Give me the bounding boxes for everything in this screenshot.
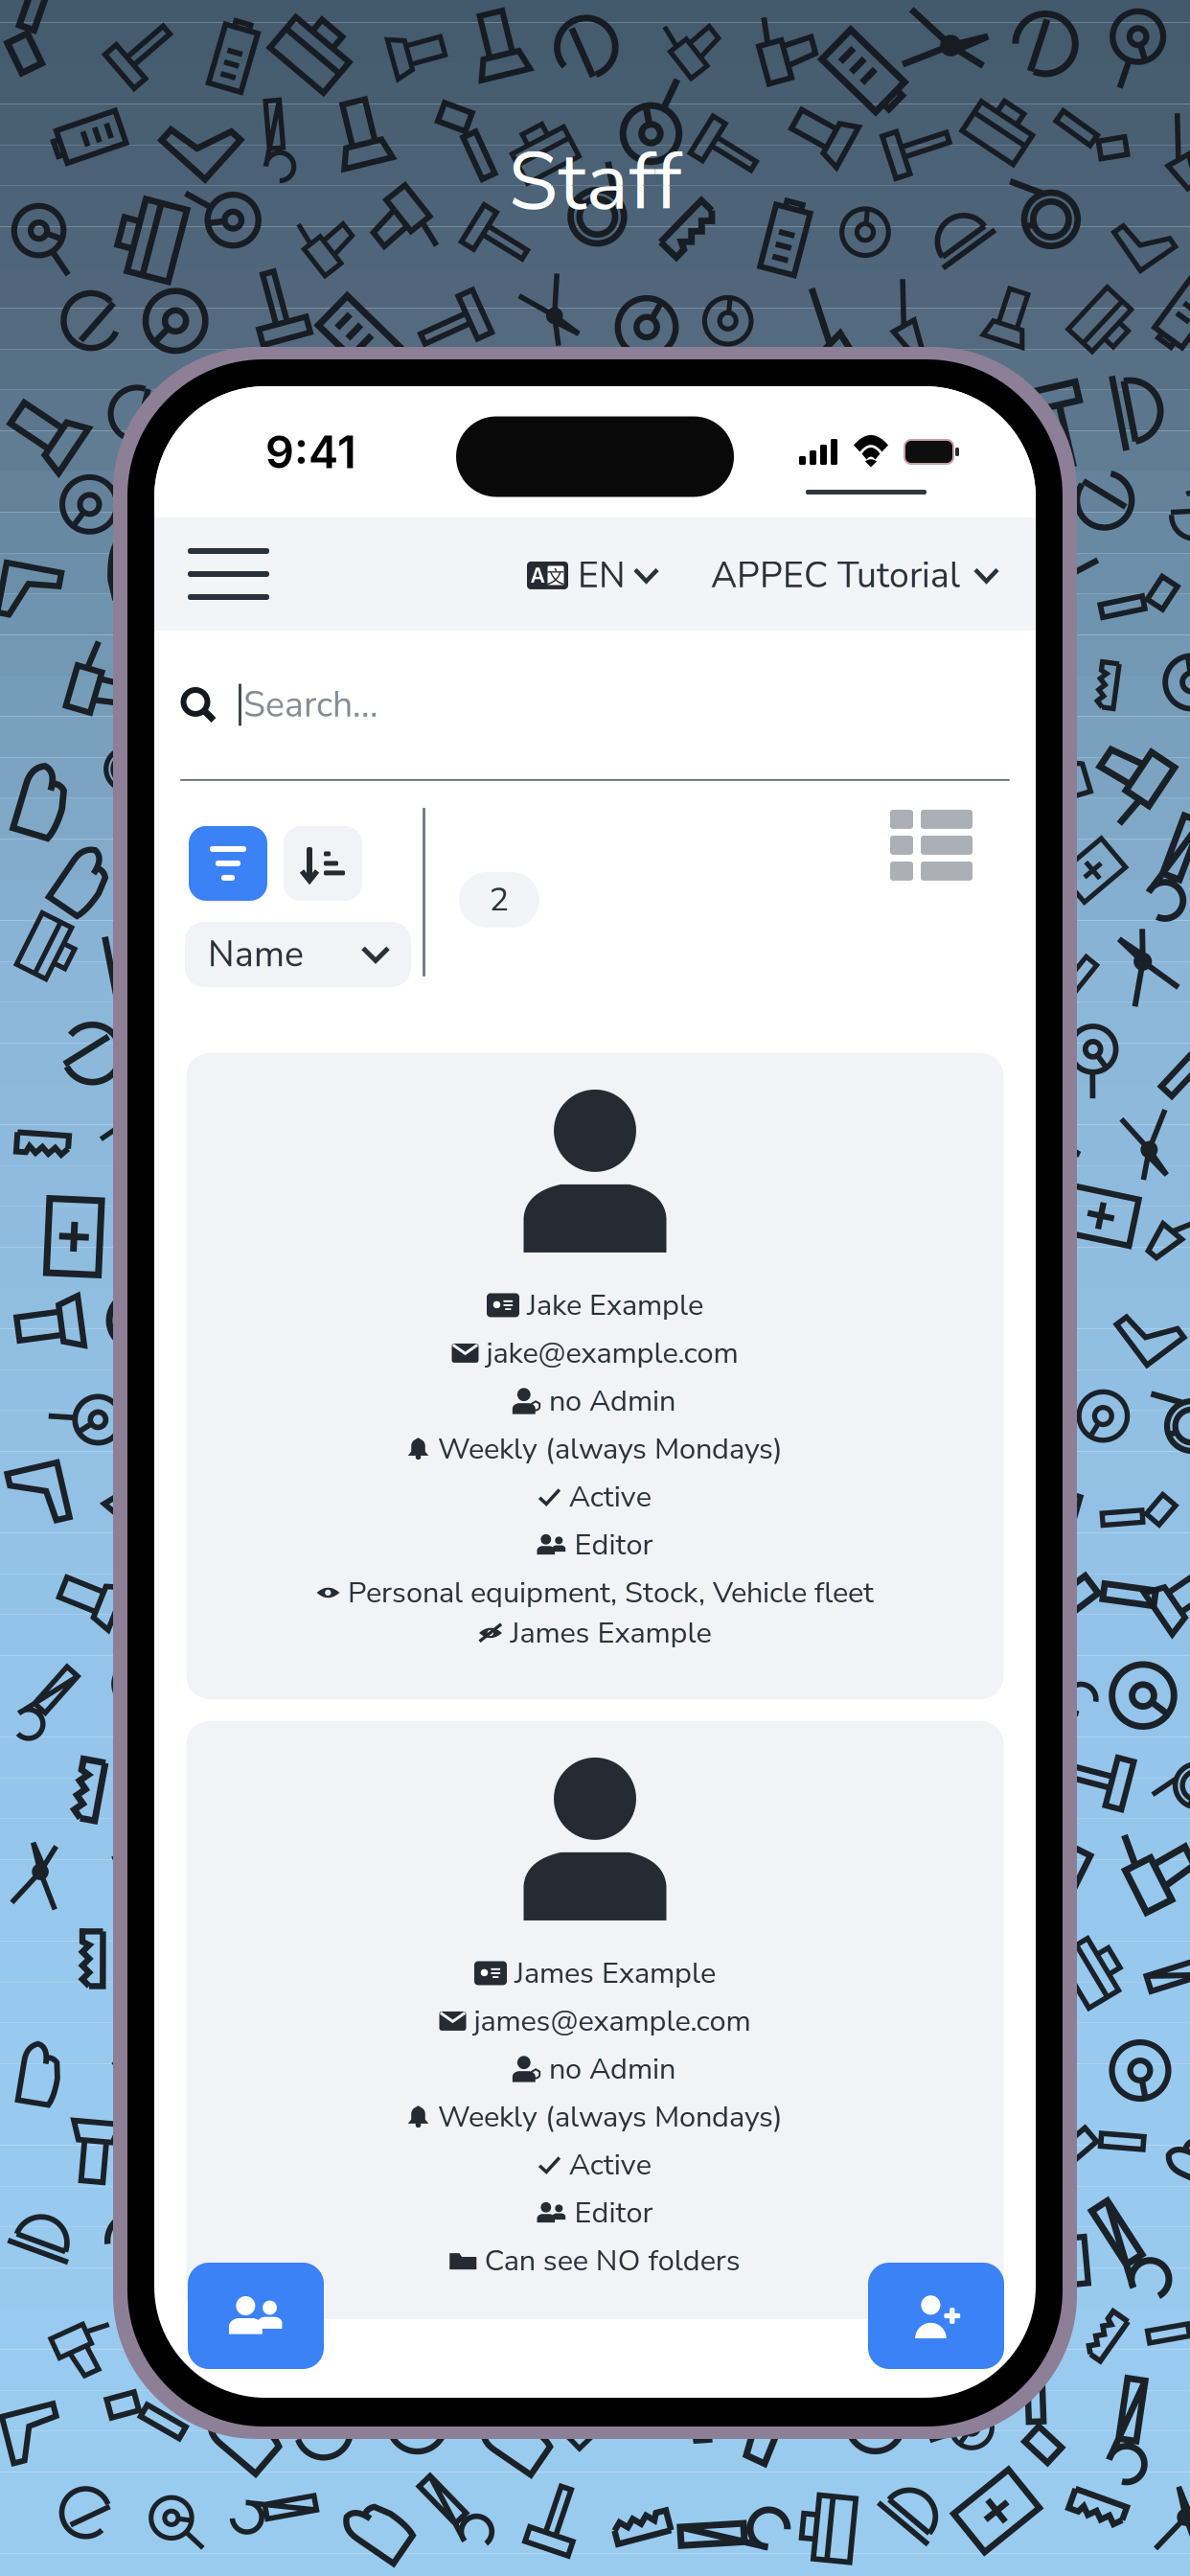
staticText: A xyxy=(530,563,545,588)
staticText: Name xyxy=(208,930,304,979)
staticText: Weekly (always Mondays) xyxy=(438,2097,783,2137)
staticText: no Admin xyxy=(549,1381,676,1421)
button[interactable]: A xyxy=(527,532,657,619)
staticText: 文 xyxy=(547,562,565,588)
button[interactable]: Table view xyxy=(882,802,980,888)
staticText: 9:41 xyxy=(265,425,356,479)
button[interactable]: Add staff member xyxy=(868,2263,1004,2369)
staticText: Personal equipment, Stock, Vehicle fleet xyxy=(348,1573,874,1613)
button[interactable]: Name xyxy=(185,922,411,987)
staticText: Jake Example xyxy=(527,1285,703,1325)
staticText: jake@example.com xyxy=(486,1333,738,1373)
staticText: Editor xyxy=(574,1525,653,1565)
staticText: Staff xyxy=(508,127,682,237)
staticText: Can see NO folders xyxy=(485,2241,740,2281)
staticText: Active xyxy=(569,2145,651,2185)
staticText: EN xyxy=(578,551,626,600)
staticText: Weekly (always Mondays) xyxy=(438,1429,783,1469)
staticText: 2 xyxy=(489,877,509,922)
button[interactable]: Sort xyxy=(284,826,362,901)
button[interactable]: Menu xyxy=(174,531,283,617)
staticText: Active xyxy=(569,1477,651,1517)
staticText: Search... xyxy=(243,680,378,729)
staticText: APPEC Tutorial xyxy=(711,551,960,600)
staticText: james@example.com xyxy=(474,2001,751,2041)
button[interactable]: All staff xyxy=(188,2263,324,2369)
button[interactable]: APPEC Tutorial xyxy=(711,532,997,619)
staticText: James Example xyxy=(515,1953,716,1993)
staticText: no Admin xyxy=(549,2049,676,2089)
staticText: James Example xyxy=(510,1613,711,1653)
staticText: Editor xyxy=(574,2193,653,2233)
button[interactable]: Filter xyxy=(189,826,267,901)
button[interactable]: Jake Example xyxy=(186,1053,1004,1699)
button[interactable]: James Example xyxy=(186,1721,1004,2319)
